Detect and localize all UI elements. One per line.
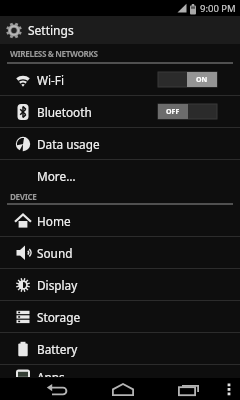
button[interactable]: Battery xyxy=(0,333,240,364)
staticText: Settings xyxy=(28,22,74,38)
staticText: Home xyxy=(37,213,71,229)
staticText: Bluetooth xyxy=(37,104,92,120)
button[interactable]: Data usage xyxy=(0,128,240,159)
button[interactable]: Storage xyxy=(0,301,240,332)
staticText: DEVICE xyxy=(10,191,37,200)
staticText: Display xyxy=(37,277,78,293)
button[interactable]: Wi-Fi xyxy=(0,64,240,95)
staticText: Storage xyxy=(37,309,81,325)
staticText: ON xyxy=(196,75,208,85)
staticText: 9:00 PM xyxy=(200,2,236,15)
button[interactable]: ON xyxy=(158,72,217,87)
button[interactable]: OFF xyxy=(158,104,217,119)
staticText: Data usage xyxy=(37,136,100,152)
staticText: WIRELESS & NETWORKS xyxy=(10,48,98,59)
button[interactable]: Settings xyxy=(0,16,240,44)
button[interactable] xyxy=(106,378,140,400)
staticText: OFF xyxy=(166,107,180,117)
button[interactable]: Home xyxy=(0,205,240,236)
button[interactable] xyxy=(223,378,235,400)
button[interactable]: Apps xyxy=(0,365,240,377)
staticText: Wi-Fi xyxy=(37,72,64,88)
button[interactable] xyxy=(173,378,203,400)
staticText: Sound xyxy=(37,245,73,261)
button[interactable]: More… xyxy=(0,160,240,191)
staticText: More… xyxy=(37,168,76,184)
button[interactable]: Display xyxy=(0,269,240,300)
button[interactable]: Bluetooth xyxy=(0,96,240,127)
button[interactable] xyxy=(41,378,73,400)
button[interactable]: Sound xyxy=(0,237,240,268)
staticText: Battery xyxy=(37,341,78,357)
staticText: Apps xyxy=(37,369,65,377)
